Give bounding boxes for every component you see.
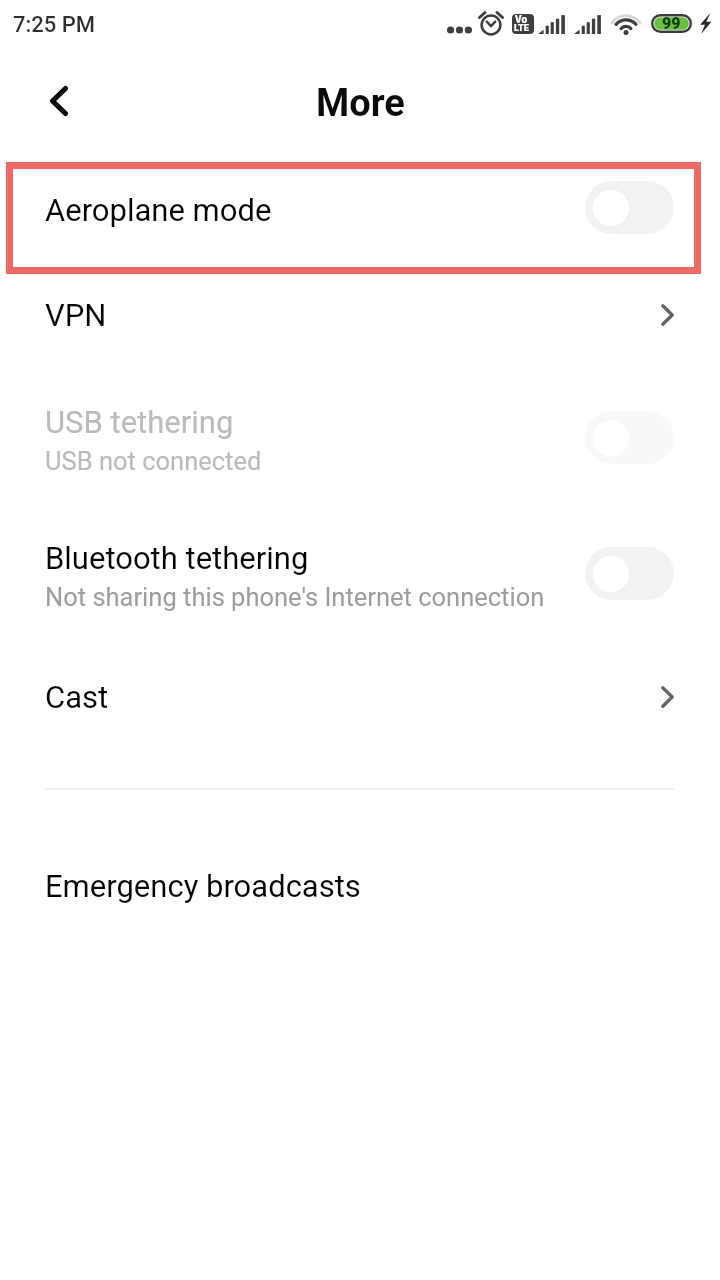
- button[interactable]: Bluetooth tethering: [0, 507, 720, 644]
- staticText: VPN: [45, 297, 661, 333]
- button[interactable]: USB tethering: [0, 371, 720, 508]
- staticText: Not sharing this phone's Internet connec…: [45, 582, 545, 612]
- staticText: USB not connected: [45, 446, 262, 476]
- staticText: USB tethering: [45, 404, 234, 440]
- button[interactable]: Emergency broadcasts: [0, 832, 720, 939]
- staticText: Aeroplane mode: [45, 192, 272, 228]
- button[interactable]: Back: [26, 69, 90, 133]
- staticText: More: [316, 81, 405, 126]
- staticText: Bluetooth tethering: [45, 540, 309, 576]
- button[interactable]: Cast: [0, 643, 720, 750]
- button[interactable]: Toggle: [585, 181, 674, 234]
- staticText: LTE: [514, 23, 529, 34]
- staticText: 7:25 PM: [13, 12, 96, 38]
- staticText: 99: [662, 14, 681, 33]
- staticText: Vo: [515, 14, 528, 26]
- button[interactable]: Toggle: [585, 411, 674, 464]
- button[interactable]: Toggle: [585, 547, 674, 600]
- staticText: Cast: [45, 679, 661, 715]
- button[interactable]: VPN: [0, 261, 720, 368]
- button[interactable]: Aeroplane mode: [0, 156, 720, 263]
- staticText: Emergency broadcasts: [45, 868, 361, 904]
